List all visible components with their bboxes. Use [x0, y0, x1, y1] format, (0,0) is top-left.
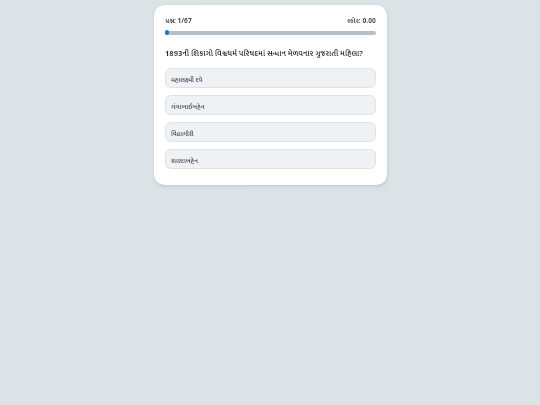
staticText: 1893ની શિકાગો વિશ્વધર્મ પરિષદમાં સન્માન …	[165, 47, 363, 60]
staticText: સ્કોર: 0.00	[347, 15, 376, 26]
staticText: મહાલક્ષ્મી દવે	[171, 75, 203, 86]
staticText: વિદ્યાગૌરી	[171, 129, 194, 140]
staticText: શારદાબહેન	[171, 156, 198, 167]
button[interactable]: ગંગાબાઈબહેન	[165, 95, 376, 115]
button[interactable]: શારદાબહેન	[165, 149, 376, 169]
button[interactable]: મહાલક્ષ્મી દવે	[165, 68, 376, 88]
staticText: પ્રશ્ન: 1/67	[165, 15, 192, 26]
other: Quiz progress	[165, 30, 376, 35]
button[interactable]: વિદ્યાગૌરી	[165, 122, 376, 142]
staticText: ગંગાબાઈબહેન	[171, 102, 205, 113]
